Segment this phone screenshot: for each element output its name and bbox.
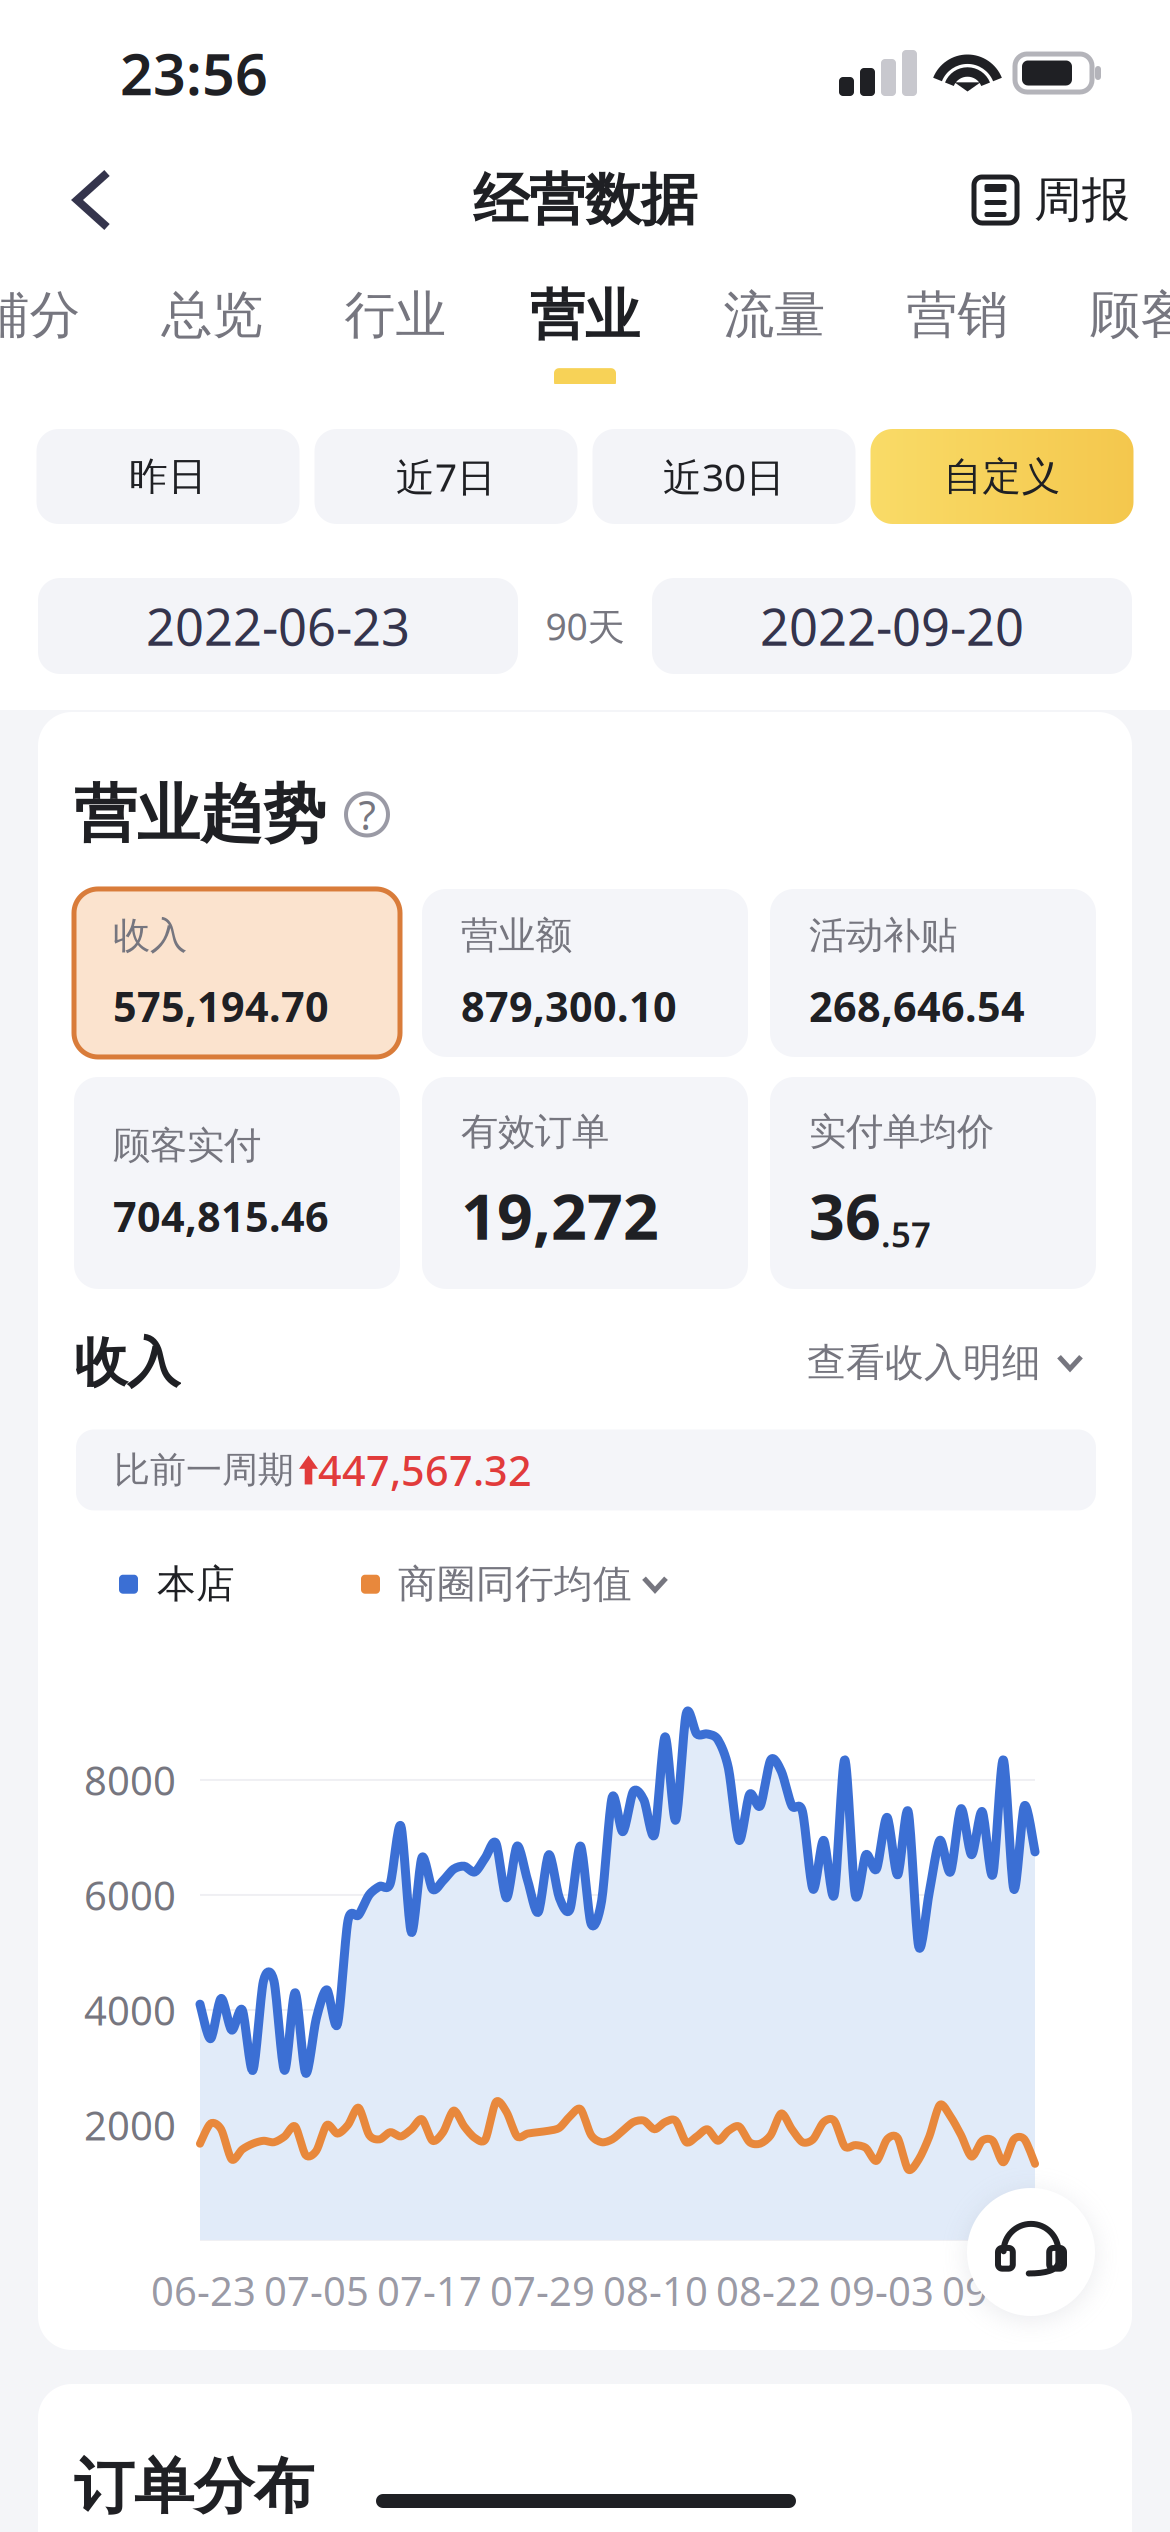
staticText: 07-05 <box>264 2264 369 2317</box>
staticText: 顾客 <box>1089 284 1170 346</box>
staticText: 23:56 <box>120 35 268 111</box>
staticText: 自定义 <box>943 453 1060 500</box>
staticText: 比前一周期 <box>114 1448 294 1492</box>
staticText: 收入 <box>113 913 187 958</box>
staticText: 08-10 <box>603 2264 708 2317</box>
staticText: 2022-06-23 <box>146 592 410 660</box>
button[interactable]: 2022-06-23 <box>38 578 518 674</box>
staticText: ? <box>358 788 375 841</box>
button[interactable]: 实付单均价 <box>770 1077 1096 1289</box>
button[interactable]: 近7日 <box>314 429 577 524</box>
staticText: 流量 <box>723 284 825 346</box>
staticText: 575,194.70 <box>113 978 329 1033</box>
staticText: 行业 <box>344 284 446 346</box>
staticText: 07-17 <box>377 2264 482 2317</box>
staticText: 活动补贴 <box>809 913 957 958</box>
button[interactable]: 2022-09-20 <box>652 578 1132 674</box>
button[interactable]: 有效订单 <box>422 1077 748 1289</box>
staticText: 704,815.46 <box>113 1188 329 1243</box>
staticText: 周报 <box>1034 170 1130 229</box>
button[interactable]: 昨日 <box>36 429 299 524</box>
button[interactable]: 营销 <box>866 249 1049 389</box>
staticText: 收入 <box>74 1330 180 1395</box>
button[interactable]: Choose series <box>632 1562 678 1606</box>
staticText: 07-29 <box>490 2264 595 2317</box>
staticText: 营业额 <box>461 913 572 958</box>
staticText: 顾客实付 <box>113 1123 261 1168</box>
staticText: 36 <box>809 1174 881 1257</box>
button[interactable]: 行业 <box>304 249 487 389</box>
staticText: 营业 <box>530 282 640 349</box>
staticText: 实付单均价 <box>809 1109 994 1155</box>
button[interactable]: Back <box>0 149 157 251</box>
staticText: 铺分 <box>0 284 80 346</box>
staticText: 09-03 <box>829 2264 934 2317</box>
button[interactable]: 营业额 <box>422 889 748 1057</box>
staticText: 营销 <box>906 284 1008 346</box>
staticText: 879,300.10 <box>461 978 677 1033</box>
button[interactable]: 顾客 <box>1049 249 1170 389</box>
staticText: 查看收入明细 <box>807 1339 1041 1386</box>
button[interactable]: 顾客实付 <box>74 1077 400 1289</box>
staticText: 经营数据 <box>473 166 697 234</box>
staticText: 90天 <box>545 601 624 651</box>
staticText: 447,567.32 <box>318 1442 532 1497</box>
staticText: 8000 <box>84 1753 176 1806</box>
staticText: 营业趋势 <box>74 776 326 853</box>
staticText: 本店 <box>157 1560 235 1608</box>
button[interactable]: 活动补贴 <box>770 889 1096 1057</box>
staticText: 2000 <box>84 2098 176 2151</box>
staticText: 近30日 <box>663 451 785 502</box>
staticText: 08-22 <box>716 2264 821 2317</box>
staticText: 订单分布 <box>74 2450 314 2524</box>
staticText: 19,272 <box>461 1174 659 1257</box>
staticText: 商圈同行均值 <box>398 1560 632 1608</box>
button[interactable]: 总览 <box>121 249 304 389</box>
staticText: .57 <box>881 1211 931 1257</box>
button[interactable]: 收入 <box>74 889 400 1057</box>
staticText: 近7日 <box>396 451 496 502</box>
button[interactable]: 营业 <box>487 249 683 389</box>
button[interactable]: 近30日 <box>592 429 855 524</box>
staticText: 昨日 <box>129 453 207 500</box>
button[interactable]: 查看收入明细 <box>807 1325 1081 1400</box>
button[interactable]: 自定义 <box>870 429 1133 524</box>
staticText: 268,646.54 <box>809 978 1025 1033</box>
staticText: 09-15 <box>942 2264 1047 2317</box>
staticText: 有效订单 <box>461 1109 609 1155</box>
button[interactable]: 流量 <box>683 249 866 389</box>
staticText: 06-23 <box>151 2264 256 2317</box>
button[interactable]: 铺分 <box>0 249 121 389</box>
staticText: 2022-09-20 <box>760 592 1024 660</box>
button[interactable]: Customer service <box>967 2188 1095 2316</box>
button[interactable]: 周报 <box>952 148 1170 251</box>
staticText: 4000 <box>84 1983 176 2036</box>
button[interactable]: Help <box>346 793 388 835</box>
staticText: 总览 <box>161 284 263 346</box>
staticText: 6000 <box>84 1868 176 1921</box>
